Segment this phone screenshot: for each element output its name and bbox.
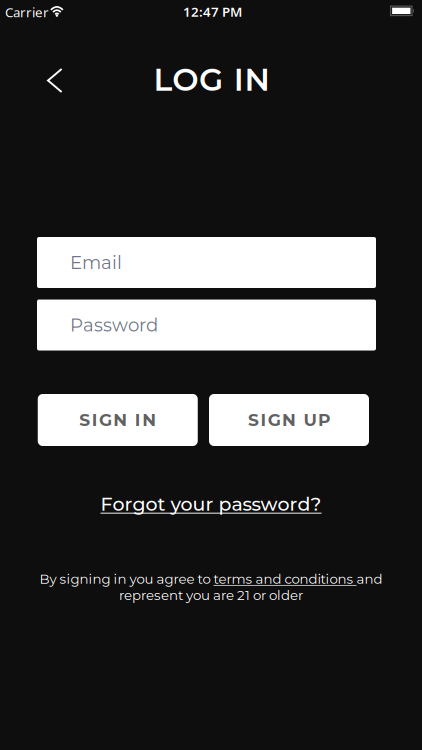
button[interactable]: SIGN IN [38,394,198,446]
button[interactable]: Forgot your password? [100,492,321,516]
button[interactable]: Email [37,237,376,288]
staticText: 12:47 PM [183,3,242,20]
button[interactable]: Password [37,299,376,350]
button[interactable] [33,58,77,102]
staticText: SIGN UP [248,410,330,430]
staticText: represent you are 21 or older [119,587,303,603]
staticText: SIGN IN [79,410,156,430]
staticText: Forgot your password? [100,492,321,516]
staticText: Email [70,251,122,273]
staticText: By signing in you agree to terms and con… [39,571,382,587]
button[interactable]: SIGN UP [209,394,369,446]
staticText: Carrier [5,3,49,21]
staticText: Password [70,314,158,336]
staticText: LOG IN [153,60,269,99]
